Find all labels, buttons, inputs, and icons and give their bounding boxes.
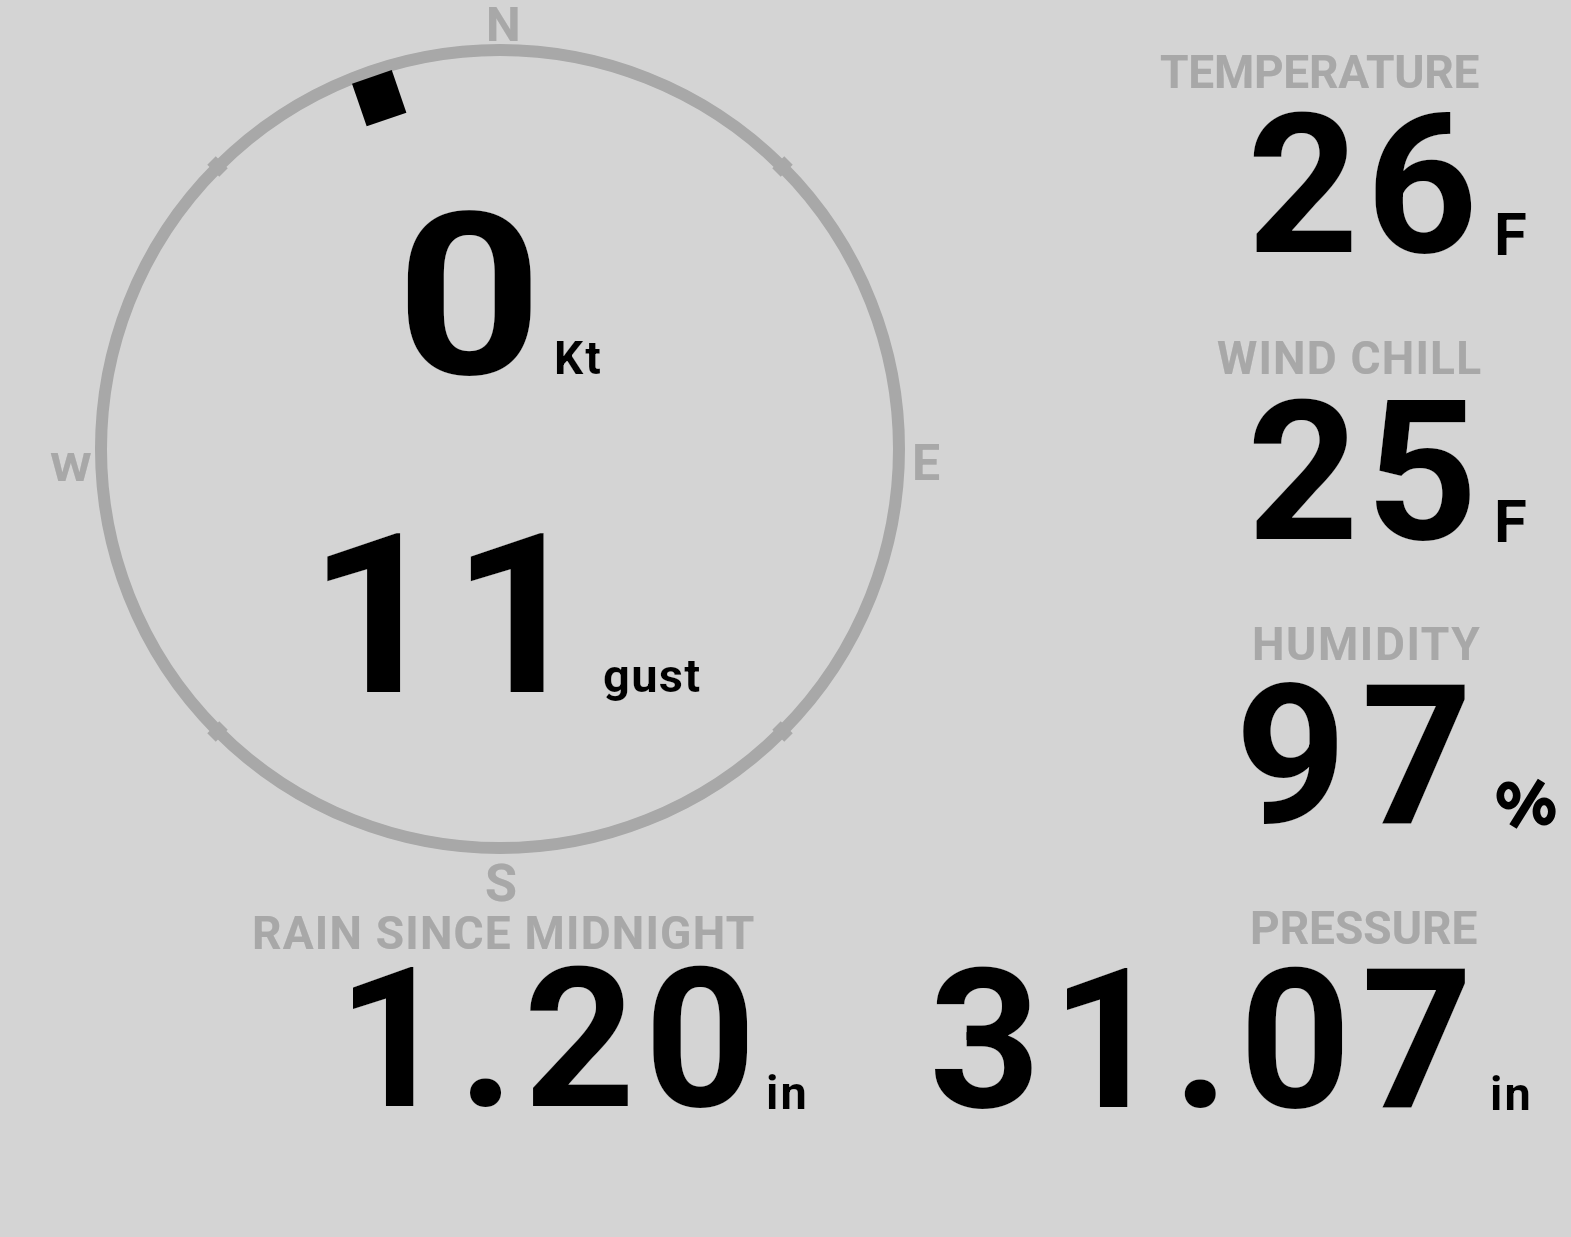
staticText: F	[1494, 486, 1527, 556]
staticText: WIND CHILL	[1217, 331, 1483, 385]
button[interactable]: HUMIDITY 97	[1130, 614, 1560, 836]
staticText: HUMIDITY	[1252, 617, 1482, 671]
staticText: 11	[308, 486, 595, 746]
staticText: 31.07	[929, 926, 1484, 1155]
button[interactable]: WIND CHILL 25 F	[1130, 328, 1560, 550]
staticText: RAIN SINCE MIDNIGHT	[252, 906, 756, 960]
staticText: 26	[1247, 71, 1485, 300]
staticText: N	[486, 0, 521, 53]
button[interactable]: PRESSURE 31.07 in	[957, 900, 1517, 1115]
staticText: PRESSURE	[1250, 901, 1478, 955]
staticText: F	[1494, 199, 1527, 269]
staticText: S	[485, 853, 518, 914]
button[interactable]: RAIN SINCE MIDNIGHT 1.20 in	[236, 905, 796, 1120]
staticText: W	[50, 445, 93, 491]
staticText: 1.20	[337, 925, 766, 1154]
staticText: Kt	[554, 331, 603, 385]
staticText: 25	[1247, 358, 1485, 587]
button[interactable]: Wind direction dial	[75, 24, 925, 874]
staticText: E	[912, 434, 941, 493]
staticText: TEMPERATURE	[1160, 45, 1480, 99]
staticText: 0	[396, 164, 543, 429]
button[interactable]: TEMPERATURE 26 F	[1130, 42, 1560, 264]
staticText: in	[766, 1065, 809, 1120]
staticText: 97	[1235, 642, 1487, 871]
staticText: gust	[603, 648, 702, 703]
staticText: in	[1490, 1066, 1533, 1121]
